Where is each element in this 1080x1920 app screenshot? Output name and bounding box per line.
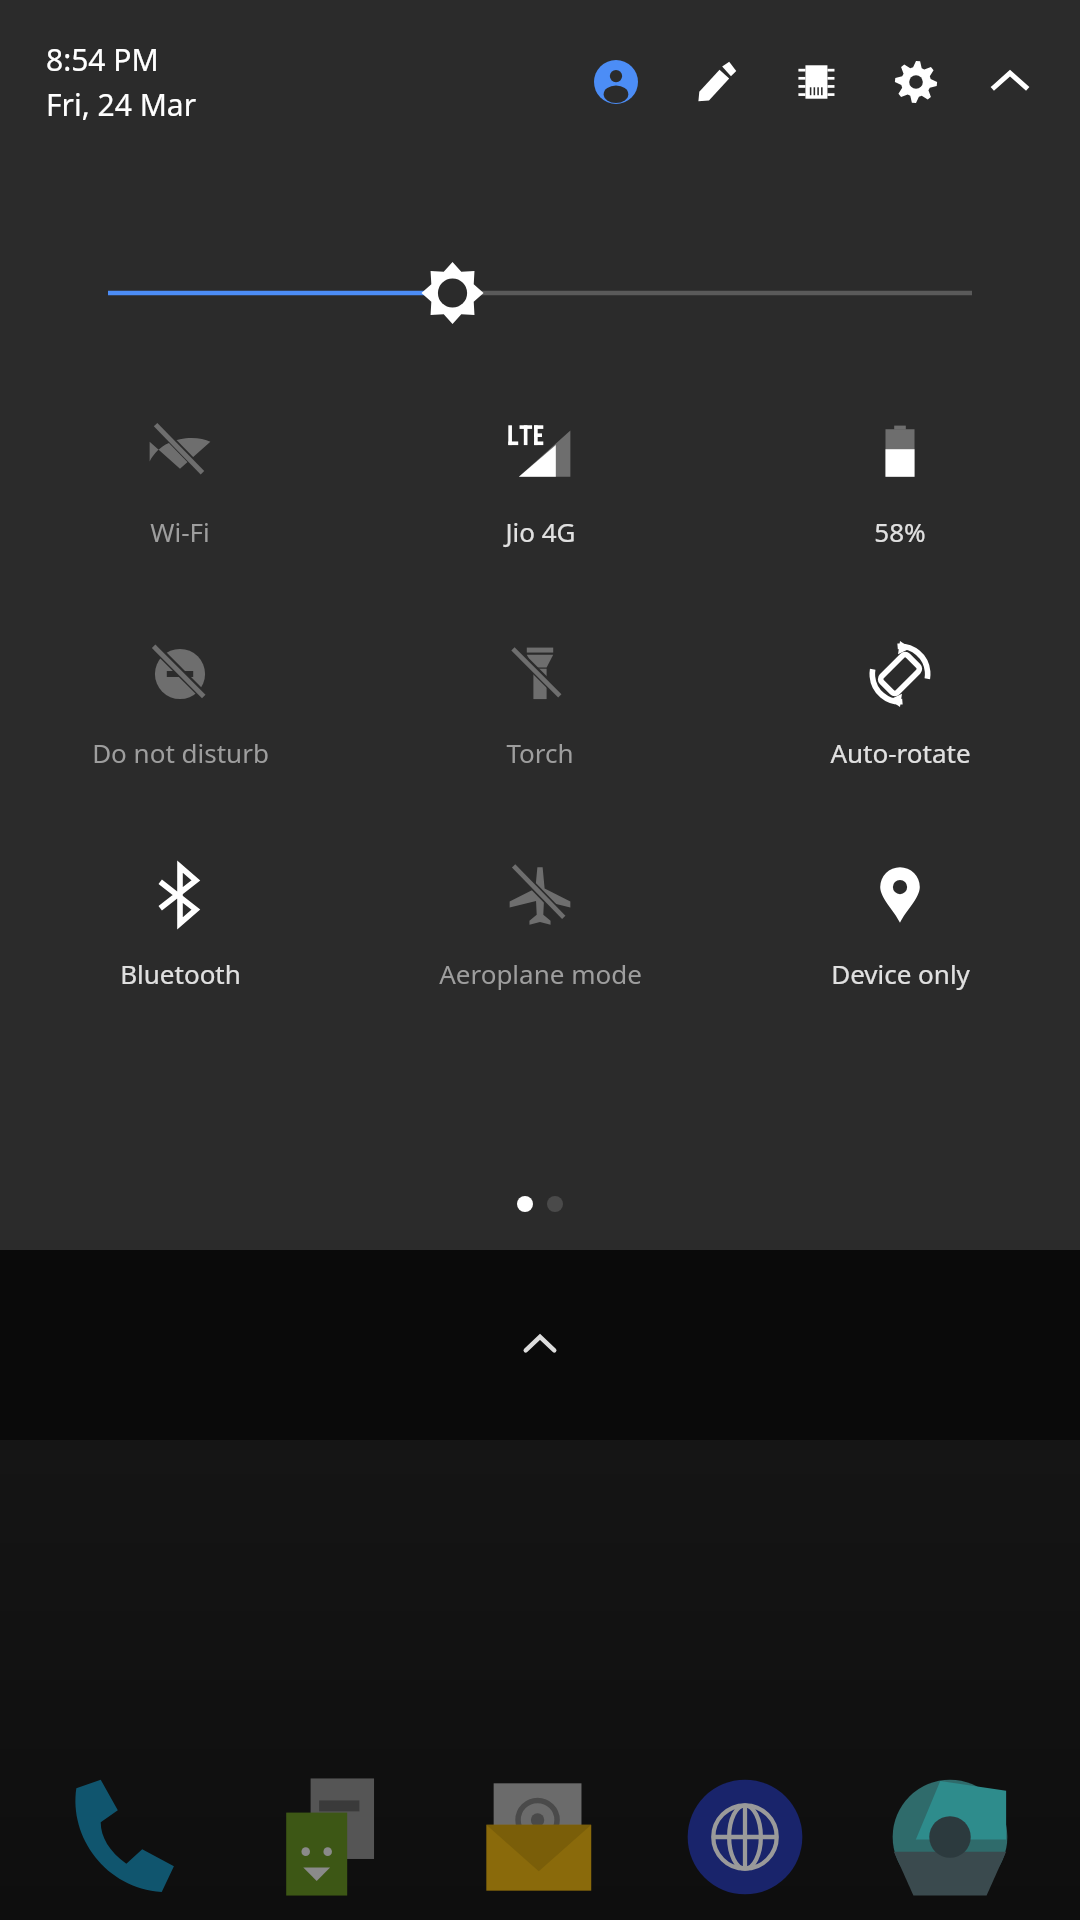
staticText: Wi-Fi: [150, 514, 210, 549]
staticText: Fri, 24 Mar: [46, 84, 197, 125]
staticText: 58%: [874, 514, 926, 549]
button[interactable]: Wi-Fi: [0, 408, 360, 555]
button[interactable]: Open app drawer: [500, 1305, 580, 1385]
button[interactable]: Bluetooth: [0, 850, 360, 997]
button[interactable]: Phone: [55, 1762, 205, 1912]
button[interactable]: Aeroplane mode: [360, 850, 720, 997]
button[interactable]: 8:54 PM: [46, 39, 197, 125]
button[interactable]: Collapse: [974, 46, 1046, 118]
button[interactable]: Email: [465, 1762, 615, 1912]
button[interactable]: Settings: [880, 46, 952, 118]
staticText: Device only: [831, 956, 970, 991]
staticText: Auto-rotate: [830, 735, 971, 770]
button[interactable]: [0, 248, 1080, 338]
button[interactable]: Messaging: [260, 1762, 410, 1912]
staticText: 8:54 PM: [46, 39, 159, 80]
staticText: Bluetooth: [120, 956, 241, 991]
button[interactable]: [547, 1196, 563, 1212]
button[interactable]: Edit: [680, 46, 752, 118]
button[interactable]: Battery saver: [780, 46, 852, 118]
button[interactable]: [517, 1196, 533, 1212]
staticText: Aeroplane mode: [439, 956, 642, 991]
button[interactable]: Device only: [720, 850, 1080, 997]
staticText: Torch: [506, 735, 574, 770]
button[interactable]: User: [580, 46, 652, 118]
staticText: Jio 4G: [505, 514, 576, 549]
button[interactable]: Browser: [670, 1762, 820, 1912]
button[interactable]: Camera: [875, 1762, 1025, 1912]
staticText: Do not disturb: [92, 735, 269, 770]
button[interactable]: Torch: [360, 629, 720, 776]
button[interactable]: Auto-rotate: [720, 629, 1080, 776]
button[interactable]: Do not disturb: [0, 629, 360, 776]
button[interactable]: Jio 4G: [360, 408, 720, 555]
button[interactable]: 58%: [720, 408, 1080, 555]
